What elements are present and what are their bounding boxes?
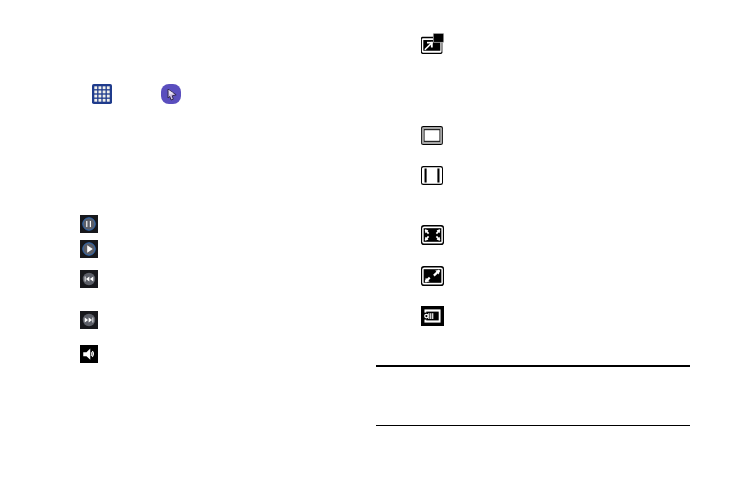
button[interactable]: Volume	[80, 345, 98, 363]
button[interactable]: Previous track	[80, 270, 98, 288]
button[interactable]: Window	[421, 126, 443, 145]
button[interactable]: Media player app	[161, 84, 181, 104]
button[interactable]: Split view	[421, 166, 443, 185]
button[interactable]: Grid of apps	[92, 84, 112, 104]
button[interactable]: Play	[80, 240, 98, 258]
button[interactable]: Open in new window	[421, 33, 444, 54]
button[interactable]: Pause	[80, 215, 98, 233]
button[interactable]: Fullscreen	[421, 225, 444, 245]
button[interactable]: Media panel	[421, 306, 444, 326]
button[interactable]: Resize window	[421, 266, 444, 286]
button[interactable]: Next track	[80, 311, 98, 329]
